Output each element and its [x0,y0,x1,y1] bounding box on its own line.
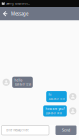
staticText: how are you? [45,107,64,111]
staticText: hello [14,78,22,82]
button[interactable]: Send [55,125,76,135]
staticText: Message [11,11,28,17]
button[interactable]: Back [2,7,10,20]
staticText: Enter message here [6,128,28,132]
staticText: 2024-06-01 13:59 [48,97,64,100]
staticText: 2024-06-01 13:58 [14,83,30,86]
staticText: Saving screenshot… [6,2,30,5]
staticText: 2024-06-01 14:00 [45,111,61,115]
staticText: hi [48,93,51,97]
staticText: Send [62,128,70,133]
